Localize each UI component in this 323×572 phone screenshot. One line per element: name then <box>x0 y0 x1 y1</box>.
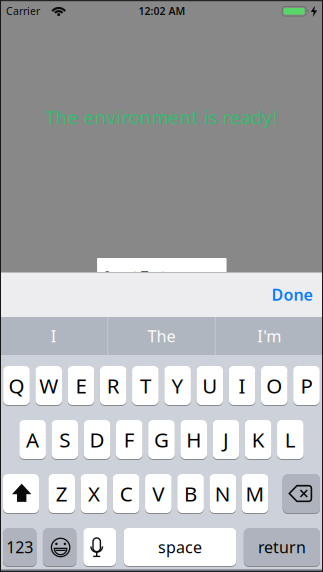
staticText: P <box>300 371 312 399</box>
staticText: K <box>252 425 265 453</box>
button[interactable]: Shift <box>3 473 39 513</box>
staticText: I <box>238 371 245 399</box>
button[interactable]: A <box>19 419 46 459</box>
staticText: 12:02 AM <box>138 4 185 18</box>
staticText: J <box>223 425 229 453</box>
staticText: L <box>285 425 296 453</box>
button[interactable]: R <box>100 365 126 405</box>
button[interactable]: I'm <box>216 317 323 355</box>
staticText: A <box>26 425 39 453</box>
staticText: return <box>258 536 306 558</box>
button[interactable]: U <box>196 365 223 405</box>
staticText: U <box>202 371 217 399</box>
button[interactable]: G <box>148 419 175 459</box>
button[interactable]: W <box>35 365 62 405</box>
button[interactable]: D <box>84 419 110 459</box>
staticText: I <box>51 325 57 347</box>
staticText: H <box>186 425 201 453</box>
staticText: Done <box>271 284 312 305</box>
button[interactable]: F <box>116 419 143 459</box>
button[interactable]: X <box>81 473 107 513</box>
staticText: 123 <box>6 536 33 558</box>
staticText: I'm <box>257 325 281 347</box>
staticText: E <box>75 371 86 399</box>
button[interactable]: B <box>177 473 204 513</box>
button[interactable]: N <box>209 473 236 513</box>
button[interactable]: L <box>277 419 304 459</box>
button[interactable]: Q <box>3 365 30 405</box>
button[interactable]: I <box>229 365 255 405</box>
staticText: Q <box>8 371 24 399</box>
staticText: space <box>158 536 202 558</box>
button[interactable]: J <box>213 419 239 459</box>
button[interactable]: return <box>244 527 320 566</box>
staticText: Input Text... <box>105 266 175 284</box>
staticText: M <box>245 479 264 507</box>
button[interactable]: C <box>113 473 139 513</box>
staticText: W <box>39 371 58 399</box>
button[interactable]: S <box>51 419 78 459</box>
button[interactable]: P <box>293 365 320 405</box>
button[interactable]: Dictate <box>83 527 116 566</box>
button[interactable]: T <box>132 365 159 405</box>
staticText: G <box>154 425 169 453</box>
button[interactable]: H <box>180 419 207 459</box>
button[interactable]: O <box>261 365 288 405</box>
staticText: B <box>184 479 197 507</box>
staticText: The <box>147 325 175 347</box>
staticText: D <box>89 425 104 453</box>
button[interactable]: space <box>124 527 236 566</box>
button[interactable]: Emoji <box>43 527 76 566</box>
staticText: X <box>88 479 100 507</box>
staticText: Y <box>172 371 184 399</box>
staticText: T <box>140 371 151 399</box>
button[interactable]: Input Text <box>97 258 227 274</box>
staticText: V <box>152 479 164 507</box>
button[interactable]: Delete <box>283 473 320 513</box>
button[interactable]: The <box>108 317 215 355</box>
staticText: R <box>107 371 120 399</box>
button[interactable]: M <box>242 473 268 513</box>
staticText: F <box>124 425 135 453</box>
button[interactable]: K <box>245 419 271 459</box>
staticText: Carrier <box>6 4 40 18</box>
button[interactable]: E <box>68 365 94 405</box>
button[interactable]: V <box>145 473 172 513</box>
button[interactable]: 123 <box>3 527 36 566</box>
button[interactable]: Y <box>164 365 191 405</box>
staticText: O <box>266 371 282 399</box>
button[interactable]: Done <box>271 284 312 305</box>
staticText: Z <box>56 479 68 507</box>
staticText: The environment is ready! <box>45 104 277 130</box>
staticText: C <box>120 479 133 507</box>
button[interactable]: I <box>0 317 107 355</box>
staticText: N <box>215 479 231 507</box>
staticText: S <box>59 425 70 453</box>
button[interactable]: Z <box>48 473 75 513</box>
